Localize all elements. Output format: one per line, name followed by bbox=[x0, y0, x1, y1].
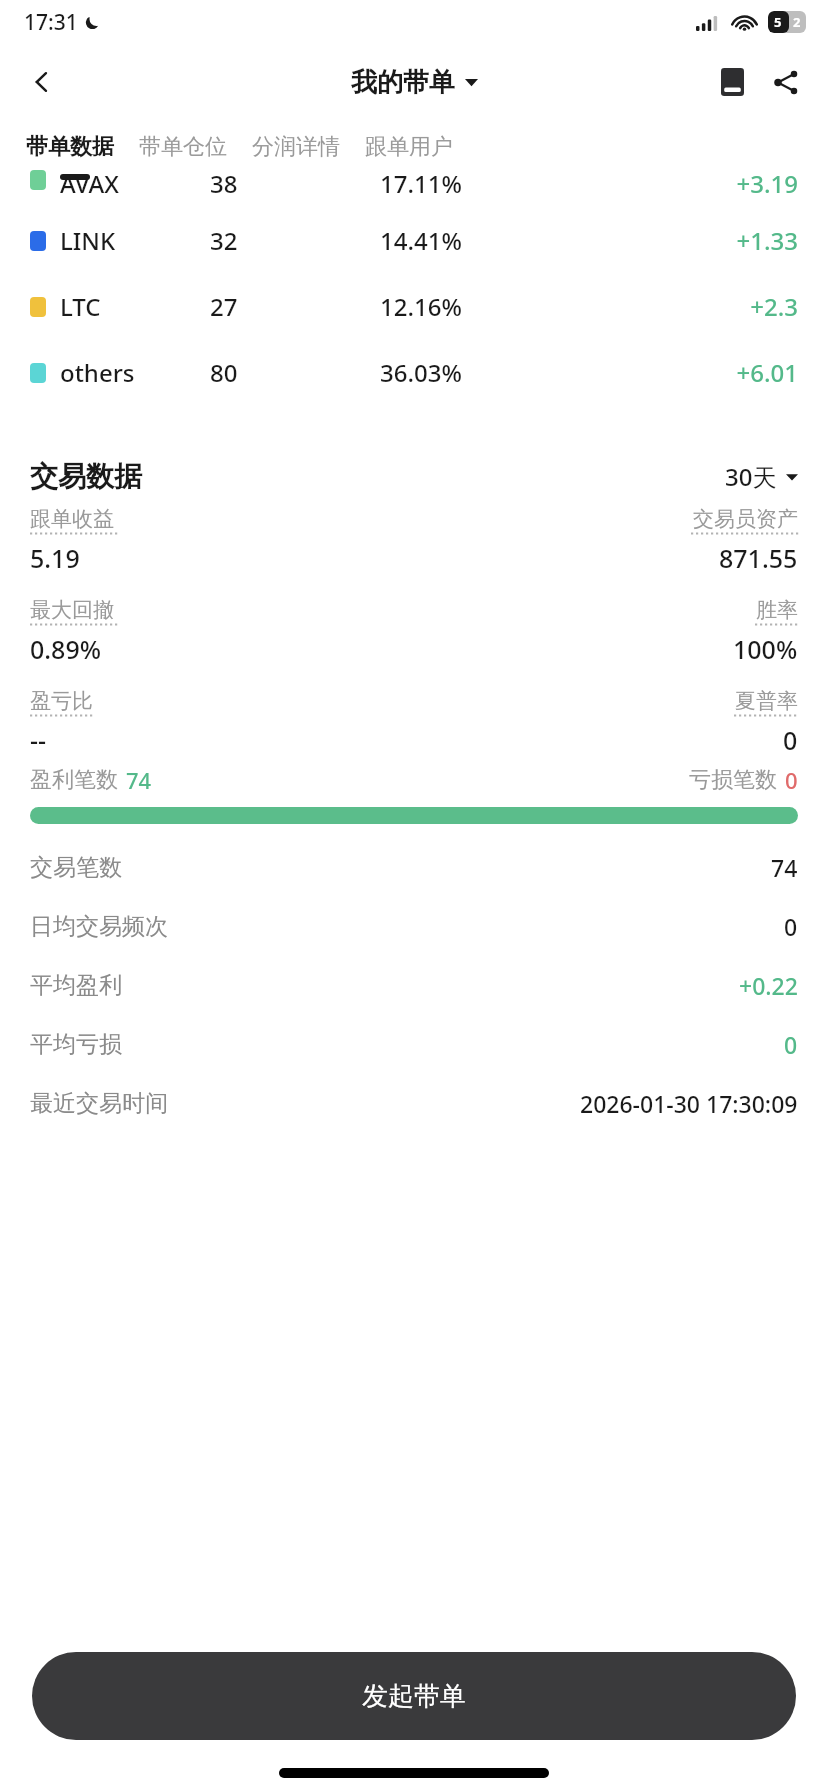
staticText: +0.22 bbox=[739, 970, 798, 1001]
staticText: 跟单收益 bbox=[30, 506, 114, 532]
staticText: 跟单用户 bbox=[365, 133, 453, 161]
staticText: 74 bbox=[771, 852, 798, 883]
staticText: 0 bbox=[784, 911, 798, 942]
staticText: 盈亏比 bbox=[30, 688, 93, 714]
staticText: 平均亏损 bbox=[30, 1030, 122, 1059]
staticText: 我的带单 bbox=[351, 66, 455, 99]
staticText: 32 bbox=[210, 224, 380, 257]
staticText: 日均交易频次 bbox=[30, 912, 168, 941]
button[interactable]: Notes bbox=[708, 58, 756, 106]
staticText: 带单仓位 bbox=[139, 133, 227, 161]
staticText: -- bbox=[30, 723, 47, 757]
staticText: +2.3 bbox=[668, 290, 798, 323]
staticText: 交易员资产 bbox=[693, 506, 798, 532]
staticText: 12.16% bbox=[380, 290, 668, 323]
staticText: 5.19 bbox=[30, 541, 80, 575]
staticText: 80 bbox=[210, 356, 380, 389]
staticText: 亏损笔数 bbox=[689, 766, 777, 794]
staticText: 100% bbox=[733, 632, 798, 666]
button[interactable]: 带单数据 bbox=[26, 120, 114, 174]
button[interactable]: AVAX bbox=[0, 181, 828, 207]
staticText: 17:31 bbox=[24, 8, 78, 37]
staticText: +1.33 bbox=[668, 224, 798, 257]
staticText: 27 bbox=[210, 290, 380, 323]
staticText: LINK bbox=[60, 224, 210, 257]
staticText: 分润详情 bbox=[252, 133, 340, 161]
button[interactable]: others bbox=[0, 339, 828, 405]
button[interactable]: Share bbox=[762, 58, 810, 106]
button[interactable]: 我的带单 bbox=[351, 66, 478, 99]
staticText: 盈利笔数 bbox=[30, 766, 118, 794]
button[interactable]: 跟单用户 bbox=[365, 120, 453, 174]
staticText: 0 bbox=[785, 765, 798, 795]
staticText: 36.03% bbox=[380, 356, 668, 389]
staticText: 0 bbox=[783, 723, 798, 757]
staticText: 14.41% bbox=[380, 224, 668, 257]
staticText: others bbox=[60, 356, 210, 389]
staticText: 交易笔数 bbox=[30, 853, 122, 882]
staticText: 最近交易时间 bbox=[30, 1089, 168, 1118]
staticText: 交易数据 bbox=[30, 459, 142, 494]
staticText: 带单数据 bbox=[26, 133, 114, 161]
staticText: 0.89% bbox=[30, 632, 102, 666]
button[interactable]: 交易数据 bbox=[30, 459, 798, 494]
button[interactable]: LTC bbox=[0, 273, 828, 339]
staticText: 17.11% bbox=[380, 167, 668, 193]
button[interactable]: Back bbox=[16, 56, 68, 108]
button[interactable]: 分润详情 bbox=[252, 120, 340, 174]
staticText: 2026-01-30 17:30:09 bbox=[580, 1088, 798, 1119]
staticText: 发起带单 bbox=[362, 1680, 466, 1713]
staticText: 2 bbox=[793, 13, 801, 31]
staticText: 30天 bbox=[725, 460, 777, 493]
staticText: 平均盈利 bbox=[30, 971, 122, 1000]
staticText: 74 bbox=[126, 765, 152, 795]
staticText: 871.55 bbox=[719, 541, 798, 575]
staticText: +3.19 bbox=[668, 167, 798, 193]
staticText: 最大回撤 bbox=[30, 597, 114, 623]
button[interactable]: 发起带单 bbox=[32, 1652, 796, 1740]
staticText: 胜率 bbox=[756, 597, 798, 623]
button[interactable]: LINK bbox=[0, 207, 828, 273]
staticText: AVAX bbox=[60, 167, 210, 193]
staticText: 5 bbox=[774, 13, 782, 31]
staticText: 0 bbox=[784, 1029, 798, 1060]
staticText: 夏普率 bbox=[735, 688, 798, 714]
staticText: LTC bbox=[60, 290, 210, 323]
staticText: 38 bbox=[210, 167, 380, 193]
staticText: +6.01 bbox=[668, 356, 798, 389]
button[interactable]: 带单仓位 bbox=[139, 120, 227, 174]
